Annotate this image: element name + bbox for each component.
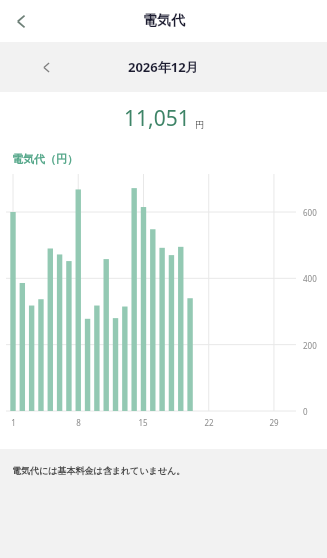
staticText: 400: [303, 273, 317, 284]
button[interactable]: Previous month: [30, 51, 62, 83]
staticText: 8: [76, 417, 81, 428]
staticText: 22: [204, 417, 214, 428]
staticText: 200: [303, 340, 317, 351]
staticText: 11,051: [124, 104, 190, 133]
staticText: 電気代: [143, 12, 185, 30]
staticText: 600: [303, 207, 317, 218]
staticText: 29: [269, 417, 279, 428]
staticText: 2026年12月: [128, 58, 199, 76]
staticText: 0: [303, 406, 308, 417]
staticText: 1: [11, 417, 16, 428]
staticText: 円: [195, 119, 204, 130]
staticText: 15: [138, 417, 148, 428]
button[interactable]: Back: [0, 0, 42, 42]
staticText: 電気代（円）: [12, 152, 78, 166]
staticText: 電気代には基本料金は含まれていません。: [12, 465, 186, 476]
